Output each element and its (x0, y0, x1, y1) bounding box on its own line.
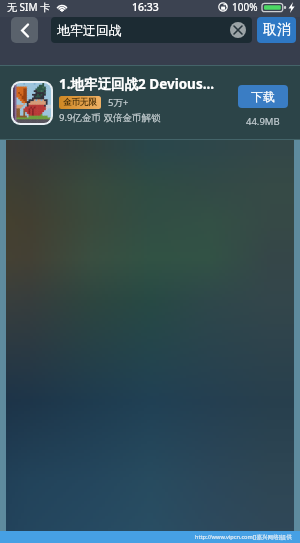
button[interactable]: 1.地牢迂回战2 Devious... (0, 65, 300, 140)
staticText: 9.9亿金币 双倍金币解锁 (59, 111, 161, 124)
button[interactable]: Back (11, 17, 38, 43)
staticText: 下载 (251, 89, 275, 104)
staticText: 无 SIM 卡 (7, 0, 51, 14)
staticText: 1.地牢迂回战2 Devious... (59, 75, 215, 93)
button[interactable]: Clear text (230, 22, 246, 38)
staticText: 金币无限 (63, 97, 97, 108)
staticText: 地牢迂回战 (57, 22, 122, 38)
staticText: 5万+ (108, 96, 129, 109)
staticText: http://www.vipcn.com[]嘉兴网络]提供 (195, 533, 292, 541)
staticText: 44.9MB (246, 115, 280, 128)
staticText: 取消 (263, 21, 291, 39)
staticText: 16:33 (132, 0, 159, 14)
button[interactable]: 下载 (238, 85, 288, 108)
staticText: 100% (232, 0, 258, 14)
button[interactable]: 地牢迂回战 (51, 17, 252, 43)
button[interactable]: 取消 (257, 17, 296, 43)
